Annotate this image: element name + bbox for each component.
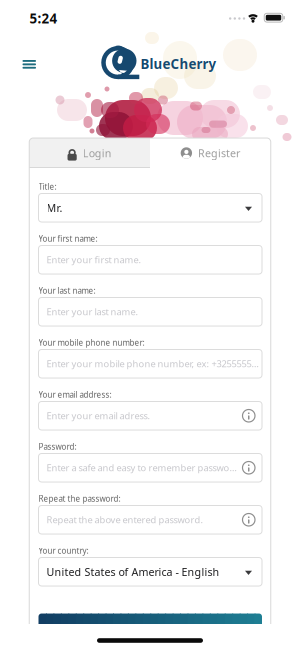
staticText: Title:: [38, 181, 56, 192]
button[interactable]: More information: [242, 409, 255, 422]
staticText: Your mobile phone number:: [38, 337, 144, 348]
button[interactable]: United States of America - English: [38, 557, 262, 586]
staticText: Your email address:: [38, 389, 111, 400]
staticText: Your first name:: [38, 233, 97, 244]
staticText: Login: [83, 146, 112, 160]
staticText: Enter your last name.: [46, 306, 138, 318]
staticText: BlueCherry: [140, 55, 216, 73]
staticText: Enter your first name.: [46, 254, 141, 266]
staticText: Repeat the above entered password.: [46, 514, 203, 526]
staticText: Mr.: [46, 201, 62, 215]
button[interactable]: BlueCherry: [140, 55, 216, 73]
staticText: 5:24: [29, 9, 57, 27]
staticText: Your last name:: [38, 285, 95, 296]
staticText: Repeat the password:: [38, 493, 120, 504]
staticText: Enter your mobile phone number, ex: +325…: [46, 358, 258, 370]
button[interactable]: Register: [150, 138, 271, 168]
button[interactable]: More information: [242, 461, 255, 474]
staticText: Enter a safe and easy to remember passwo…: [46, 462, 238, 474]
button[interactable]: Register: [38, 613, 262, 649]
button[interactable]: Menu: [16, 54, 42, 75]
staticText: Register: [198, 146, 240, 160]
staticText: Your country:: [38, 545, 88, 556]
staticText: Enter your email adress.: [46, 410, 150, 422]
button[interactable]: Mr.: [38, 193, 262, 222]
staticText: Password:: [38, 441, 76, 452]
button[interactable]: More information: [242, 513, 255, 526]
button[interactable]: Login: [29, 138, 150, 168]
staticText: United States of America - English: [46, 565, 219, 579]
